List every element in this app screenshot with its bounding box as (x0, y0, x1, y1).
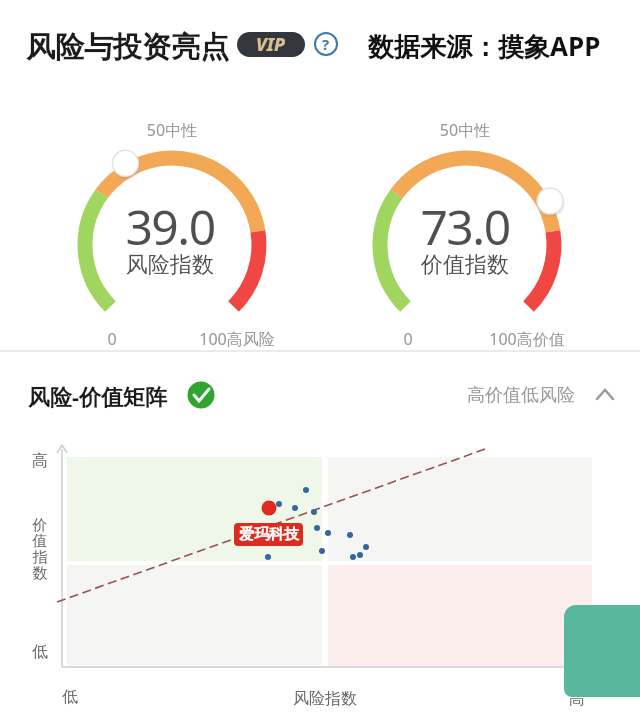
button[interactable]: VIP (237, 32, 305, 57)
button[interactable]: ? (314, 32, 338, 56)
staticText: 低 (26, 642, 54, 662)
button[interactable] (564, 605, 640, 697)
staticText: 高 (563, 689, 591, 709)
staticText: 0 (92, 328, 132, 350)
staticText: 73.0 (365, 194, 565, 259)
staticText: 价值指数 (365, 251, 565, 279)
staticText: 价 (26, 516, 54, 535)
staticText: 50中性 (405, 119, 525, 141)
staticText: 风险-价值矩阵 (28, 381, 228, 411)
staticText: 值 (26, 532, 54, 551)
staticText: 0 (388, 328, 428, 350)
staticText: 指 (26, 548, 54, 567)
staticText: 风险指数 (290, 689, 360, 709)
staticText: ? (322, 34, 330, 54)
staticText: 风险指数 (70, 251, 270, 279)
button[interactable]: 爱玛科技 (234, 523, 303, 546)
staticText: 爱玛科技 (239, 525, 299, 544)
staticText: 39.0 (70, 194, 270, 259)
staticText: 低 (56, 687, 84, 707)
staticText: 风险与投资亮点 (26, 29, 246, 66)
staticText: 高价值低风险 (467, 384, 587, 407)
staticText: 数据来源：摸象APP (368, 28, 618, 64)
staticText: 100高价值 (482, 328, 572, 350)
staticText: 100高风险 (192, 328, 282, 350)
staticText: 高 (26, 451, 54, 471)
staticText: 数 (26, 564, 54, 583)
staticText: VIP (256, 32, 286, 57)
button[interactable]: 高价值低风险 (460, 382, 615, 408)
staticText: 50中性 (112, 119, 232, 141)
